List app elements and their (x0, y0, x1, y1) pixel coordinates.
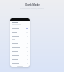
staticText: Dark Mode (25, 3, 40, 7)
button[interactable] (10, 49, 30, 53)
button[interactable] (10, 30, 30, 34)
button[interactable] (10, 61, 30, 65)
button[interactable] (10, 53, 30, 57)
button[interactable] (10, 26, 30, 30)
button[interactable] (10, 41, 30, 45)
button[interactable] (10, 34, 30, 38)
staticText: Comfortable viewing, anytime (20, 7, 44, 9)
button[interactable] (10, 45, 30, 49)
button[interactable] (10, 57, 30, 61)
